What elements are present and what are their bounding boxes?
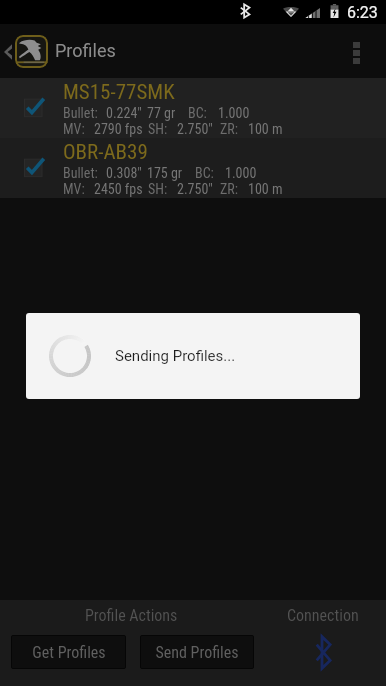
button[interactable]: Send Profiles [140, 635, 254, 669]
staticText: 100 m [248, 121, 283, 137]
staticText: 2450 fps [94, 181, 143, 197]
button[interactable]: OBR-AB39 [0, 138, 386, 198]
staticText: Get Profiles [32, 643, 106, 662]
staticText: 1.000 [218, 105, 250, 121]
button[interactable]: Bluetooth connection [300, 631, 344, 673]
staticText: 2790 fps [94, 121, 143, 137]
staticText: 0.224" [106, 105, 142, 121]
staticText: ZR: [220, 121, 239, 137]
staticText: 77 gr [147, 105, 176, 121]
button[interactable]: More options [340, 24, 386, 78]
staticText: Connection [287, 606, 359, 625]
staticText: 2.750" [177, 121, 213, 137]
staticText: ZR: [220, 181, 239, 197]
staticText: Profile Actions [85, 606, 178, 625]
staticText: Bullet: [63, 165, 98, 181]
staticText: SH: [148, 121, 168, 137]
staticText: SH: [148, 181, 168, 197]
staticText: Sending Profiles... [115, 347, 236, 365]
staticText: Profiles [55, 40, 116, 61]
button[interactable]: Navigate up [0, 24, 52, 78]
button[interactable]: Get Profiles [11, 635, 126, 669]
staticText: Bullet: [63, 105, 98, 121]
staticText: 0.308" [106, 165, 142, 181]
staticText: 100 m [248, 181, 283, 197]
button[interactable]: MS15-77SMK [0, 78, 386, 138]
staticText: 175 gr [147, 165, 183, 181]
staticText: BC: [188, 105, 207, 121]
staticText: MV: [63, 121, 85, 137]
staticText: MV: [63, 181, 85, 197]
staticText: 1.000 [225, 165, 257, 181]
staticText: 6:23 [347, 3, 378, 22]
staticText: 2.750" [177, 181, 213, 197]
staticText: OBR-AB39 [63, 140, 148, 165]
staticText: Send Profiles [155, 643, 239, 662]
staticText: MS15-77SMK [63, 80, 175, 105]
staticText: BC: [195, 165, 214, 181]
